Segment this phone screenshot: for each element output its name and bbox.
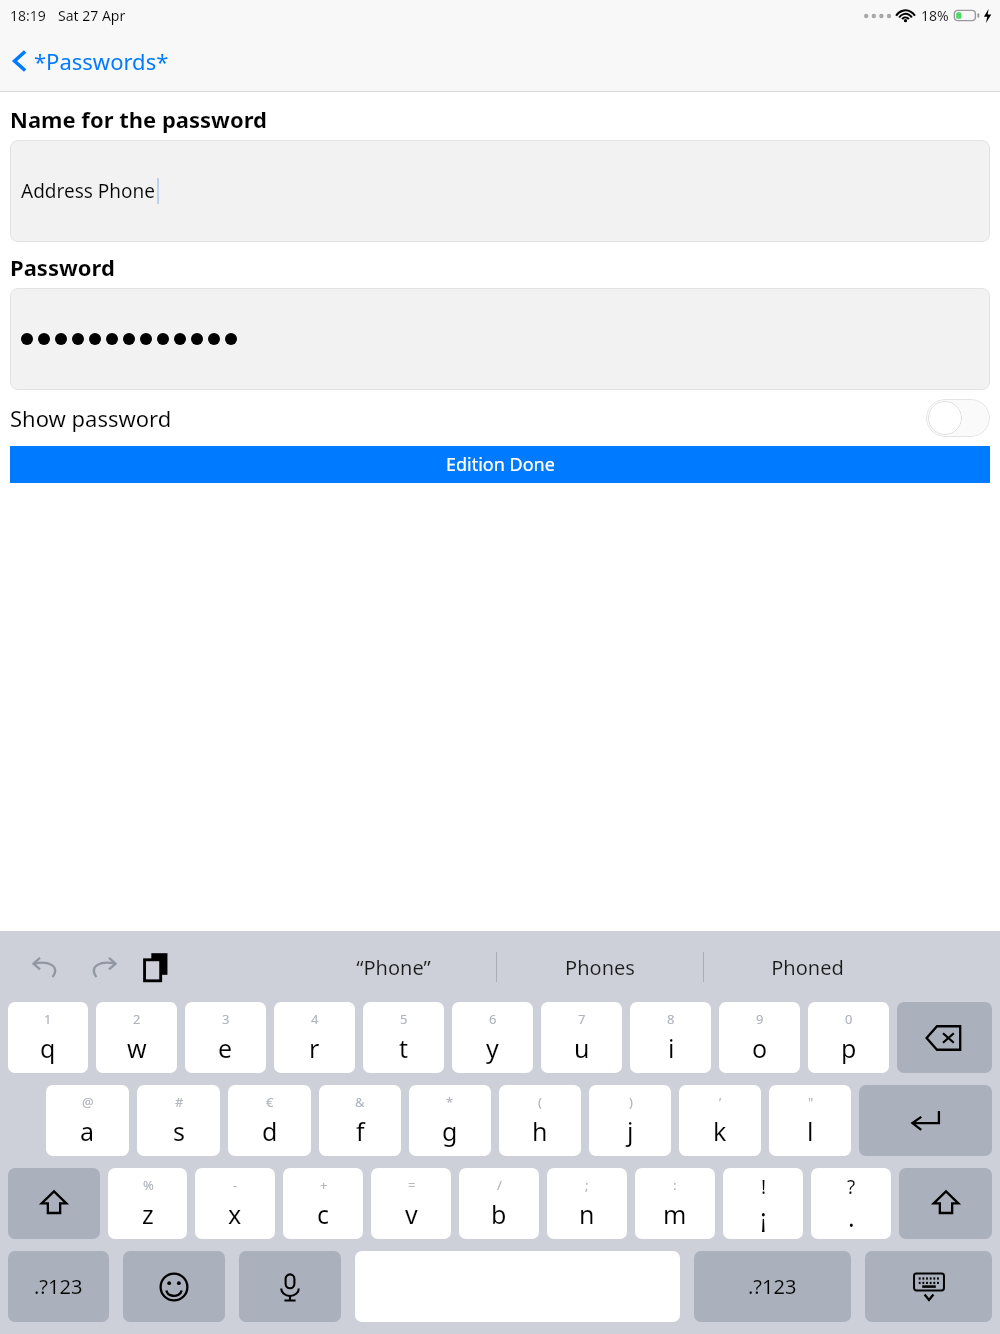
staticText: % — [143, 1176, 154, 1194]
staticText: ! — [761, 1174, 767, 1200]
staticText: Edition Done — [446, 452, 555, 477]
button[interactable]: Return — [859, 1085, 992, 1156]
button[interactable]: Address Phone — [10, 140, 990, 242]
button[interactable] — [10, 288, 990, 390]
button[interactable]: = — [371, 1168, 451, 1239]
button[interactable]: 5 — [363, 1002, 444, 1073]
button[interactable]: # — [137, 1085, 220, 1156]
other: Show password toggle — [926, 399, 990, 437]
staticText: *Passwords* — [34, 46, 169, 76]
button[interactable]: 6 — [452, 1002, 533, 1073]
button[interactable]: Emoji — [123, 1251, 225, 1322]
button[interactable]: & — [319, 1085, 401, 1156]
button[interactable]: 9 — [719, 1002, 800, 1073]
staticText: ; — [585, 1176, 589, 1194]
button[interactable]: % — [108, 1168, 187, 1239]
button[interactable]: 8 — [630, 1002, 711, 1073]
staticText: @ — [82, 1093, 94, 1111]
button[interactable]: ? — [811, 1168, 891, 1239]
button[interactable]: + — [283, 1168, 363, 1239]
button[interactable]: Phoned — [704, 942, 910, 992]
button[interactable]: ’ — [679, 1085, 761, 1156]
staticText: 2 — [133, 1010, 141, 1028]
staticText: ’ — [719, 1093, 722, 1111]
staticText: z — [142, 1197, 154, 1231]
button[interactable]: Shift right — [899, 1168, 992, 1239]
staticText: " — [808, 1093, 814, 1111]
staticText: Address Phone — [21, 178, 156, 204]
button[interactable]: .?123 — [8, 1251, 109, 1322]
staticText: ¡ — [760, 1200, 767, 1234]
staticText: 0 — [845, 1010, 853, 1028]
staticText: 7 — [578, 1010, 586, 1028]
staticText: a — [80, 1114, 95, 1148]
staticText: + — [320, 1176, 328, 1194]
button[interactable]: " — [769, 1085, 851, 1156]
button[interactable]: : — [635, 1168, 715, 1239]
button[interactable]: @ — [46, 1085, 129, 1156]
button[interactable]: 3 — [185, 1002, 266, 1073]
staticText: k — [713, 1114, 727, 1148]
staticText: x — [228, 1197, 242, 1231]
button[interactable]: 0 — [808, 1002, 889, 1073]
button[interactable]: 1 — [8, 1002, 88, 1073]
button[interactable]: *Passwords* — [12, 46, 169, 76]
button[interactable]: Shift — [8, 1168, 100, 1239]
staticText: Password — [10, 252, 115, 282]
button[interactable]: ( — [499, 1085, 581, 1156]
staticText: b — [491, 1197, 507, 1231]
staticText: 18% — [921, 6, 949, 25]
staticText: s — [173, 1114, 185, 1148]
button[interactable]: 7 — [541, 1002, 622, 1073]
staticText: q — [40, 1031, 56, 1065]
button[interactable]: Paste — [136, 947, 176, 987]
button[interactable]: - — [195, 1168, 275, 1239]
button[interactable]: * — [409, 1085, 491, 1156]
staticText: 8 — [667, 1010, 675, 1028]
staticText: e — [218, 1031, 233, 1065]
button[interactable]: Edition Done — [10, 446, 990, 483]
button[interactable]: ! — [723, 1168, 803, 1239]
staticText: h — [532, 1114, 548, 1148]
staticText: l — [807, 1114, 814, 1148]
staticText: ( — [538, 1093, 542, 1111]
button[interactable]: Phones — [497, 942, 703, 992]
staticText: j — [627, 1114, 634, 1148]
button[interactable]: Backspace — [897, 1002, 992, 1073]
staticText: Phones — [565, 954, 635, 981]
staticText: : — [673, 1176, 677, 1194]
staticText: i — [668, 1031, 675, 1065]
button[interactable]: € — [228, 1085, 311, 1156]
staticText: 4 — [311, 1010, 319, 1028]
staticText: m — [663, 1197, 687, 1231]
button[interactable]: .?123 — [694, 1251, 851, 1322]
staticText: = — [408, 1176, 416, 1194]
button[interactable]: Dictation — [239, 1251, 341, 1322]
button[interactable]: ; — [547, 1168, 627, 1239]
button[interactable]: ) — [589, 1085, 671, 1156]
staticText: f — [356, 1114, 365, 1148]
button[interactable]: 2 — [96, 1002, 177, 1073]
button[interactable]: Undo — [26, 947, 66, 987]
button[interactable]: Redo — [83, 947, 123, 987]
staticText: .?123 — [34, 1273, 83, 1300]
button[interactable]: Show password — [0, 390, 1000, 446]
staticText: 18:19 — [10, 6, 46, 25]
staticText: n — [579, 1197, 595, 1231]
button[interactable]: “Phone” — [290, 942, 496, 992]
staticText: Show password — [10, 403, 172, 433]
staticText: # — [175, 1093, 184, 1111]
staticText: .?123 — [748, 1273, 797, 1300]
staticText: y — [486, 1031, 499, 1065]
staticText: 5 — [400, 1010, 408, 1028]
staticText: “Phone” — [356, 954, 431, 981]
staticText: / — [497, 1176, 502, 1194]
staticText: o — [752, 1031, 768, 1065]
staticText: - — [233, 1176, 238, 1194]
button[interactable]: Hide keyboard — [865, 1251, 992, 1322]
staticText: ) — [629, 1093, 633, 1111]
button[interactable]: 4 — [274, 1002, 355, 1073]
button[interactable]: / — [459, 1168, 539, 1239]
staticText: g — [442, 1114, 458, 1148]
